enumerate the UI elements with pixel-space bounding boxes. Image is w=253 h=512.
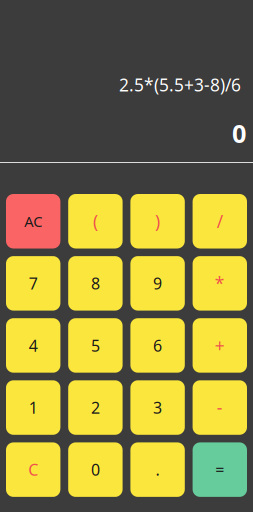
- button[interactable]: *: [193, 256, 247, 311]
- staticText: C: [28, 459, 38, 480]
- button[interactable]: (: [68, 194, 123, 248]
- button[interactable]: /: [193, 194, 247, 248]
- button[interactable]: 8: [68, 256, 123, 311]
- staticText: (: [93, 210, 98, 233]
- button[interactable]: +: [193, 318, 247, 373]
- staticText: /: [217, 210, 223, 233]
- staticText: +: [215, 334, 225, 357]
- button[interactable]: 4: [6, 318, 60, 373]
- button[interactable]: -: [193, 380, 247, 435]
- staticText: 5: [91, 335, 100, 356]
- button[interactable]: 5: [68, 318, 123, 373]
- staticText: ): [155, 210, 160, 233]
- staticText: 8: [91, 273, 100, 294]
- staticText: 6: [153, 335, 162, 356]
- staticText: 7: [29, 273, 38, 294]
- button[interactable]: 3: [130, 380, 185, 435]
- button[interactable]: 7: [6, 256, 60, 311]
- staticText: 2.5*(5.5+3-8)/6: [119, 73, 241, 96]
- staticText: 2: [91, 397, 100, 418]
- staticText: .: [156, 459, 160, 480]
- button[interactable]: 0: [68, 442, 123, 497]
- button[interactable]: 6: [130, 318, 185, 373]
- button[interactable]: 9: [130, 256, 185, 311]
- staticText: *: [215, 272, 225, 295]
- staticText: -: [217, 396, 223, 419]
- staticText: =: [215, 459, 224, 480]
- button[interactable]: ): [130, 194, 185, 248]
- button[interactable]: .: [130, 442, 185, 497]
- staticText: 4: [29, 335, 38, 356]
- button[interactable]: AC: [6, 194, 60, 248]
- staticText: 3: [153, 397, 162, 418]
- button[interactable]: 2: [68, 380, 123, 435]
- staticText: 1: [29, 397, 38, 418]
- staticText: 0: [91, 459, 100, 480]
- staticText: 0: [232, 116, 246, 150]
- button[interactable]: C: [6, 442, 60, 497]
- staticText: 9: [153, 273, 162, 294]
- button[interactable]: =: [193, 442, 247, 497]
- button[interactable]: 1: [6, 380, 60, 435]
- staticText: AC: [24, 211, 42, 231]
